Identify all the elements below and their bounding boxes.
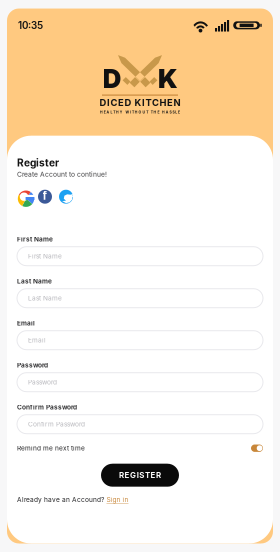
staticText: 10:35 — [18, 20, 43, 31]
staticText: First Name — [17, 235, 53, 243]
staticText: First Name — [28, 252, 62, 260]
button[interactable]: Sign up with Facebook — [38, 190, 52, 204]
staticText: Email — [17, 319, 35, 327]
staticText: Register — [17, 157, 59, 169]
staticText: D — [102, 63, 121, 94]
staticText: Last Name — [17, 277, 52, 285]
staticText: f — [42, 189, 47, 203]
staticText: Create Account to continue! — [17, 170, 107, 178]
button[interactable]: REGISTER — [101, 464, 179, 487]
button[interactable]: Last Name — [17, 289, 263, 308]
staticText: Last Name — [28, 294, 62, 302]
button[interactable]: Remind me next time — [17, 443, 263, 454]
button[interactable]: Email — [17, 331, 263, 350]
staticText: Password — [17, 361, 48, 369]
button[interactable]: First Name — [17, 247, 263, 266]
staticText: Already have an Accound? — [17, 496, 104, 504]
staticText: HEALTHY WITHOUT THE HASSLE — [100, 110, 180, 114]
button[interactable]: Sign in — [106, 496, 128, 504]
staticText: DICED KITCHEN — [99, 97, 180, 108]
button[interactable]: Confirm Password — [17, 415, 263, 434]
staticText: Email — [28, 336, 46, 344]
staticText: Remind me next time — [17, 444, 85, 452]
staticText: K — [158, 63, 178, 94]
button[interactable]: Sign up with Google — [17, 190, 31, 204]
button[interactable]: Sign up with Twitter — [59, 190, 73, 204]
staticText: REGISTER — [119, 470, 161, 480]
staticText: Confirm Password — [17, 403, 77, 411]
button[interactable]: Password — [17, 373, 263, 392]
staticText: Password — [28, 378, 57, 386]
staticText: Confirm Password — [28, 420, 85, 428]
staticText: Sign in — [106, 496, 128, 504]
